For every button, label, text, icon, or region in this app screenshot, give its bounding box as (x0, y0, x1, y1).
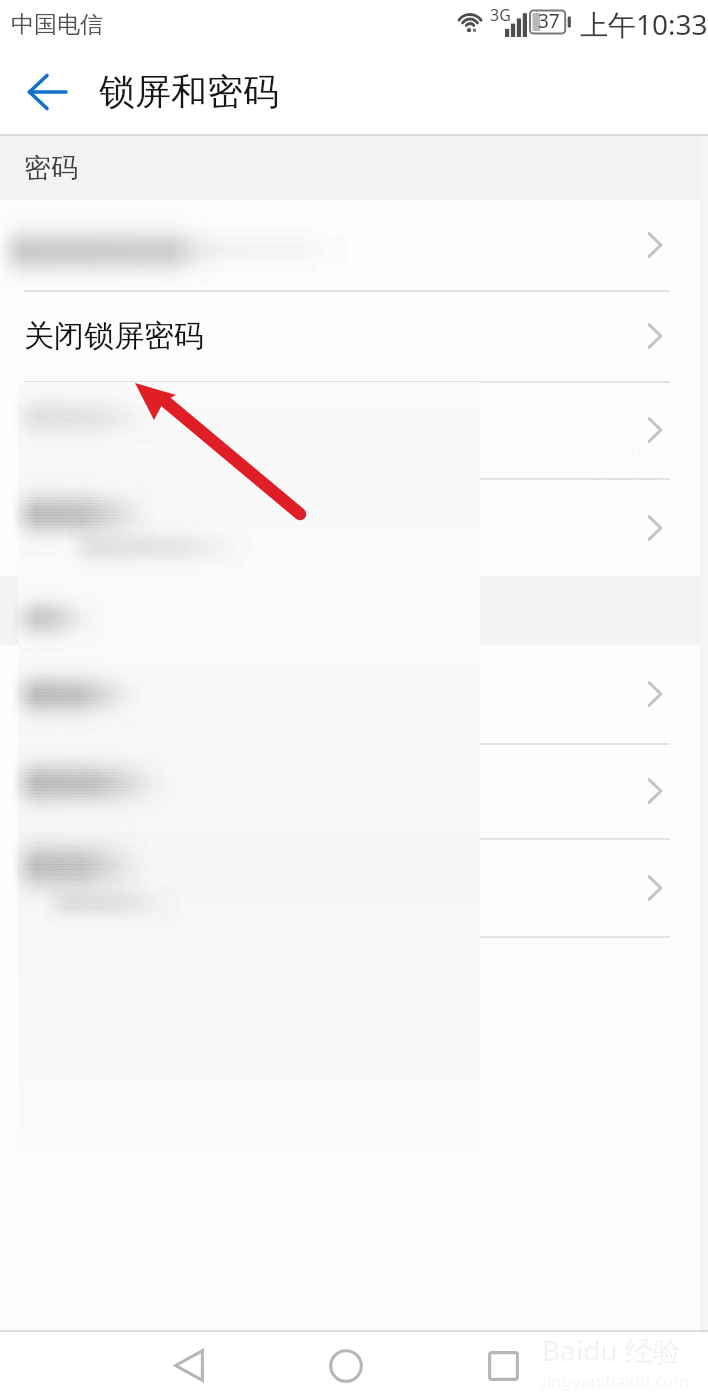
staticText: 中国电信 (11, 10, 103, 39)
button[interactable] (0, 744, 708, 838)
staticText: 密码 (24, 151, 78, 185)
staticText: jingyan.baidu.com (590, 467, 703, 485)
button[interactable] (0, 382, 708, 478)
button[interactable]: Recents (443, 1335, 563, 1396)
button[interactable]: Home (286, 1335, 406, 1396)
staticText: 关闭锁屏密码 (24, 317, 204, 355)
staticText: Baidu 经验 (590, 437, 700, 467)
staticText: 37 (538, 8, 560, 34)
staticText: Baidu 经验 (542, 1331, 681, 1369)
button[interactable] (0, 645, 708, 743)
staticText: 上午10:33 (580, 5, 708, 43)
button[interactable] (0, 479, 708, 576)
staticText: 锁屏和密码 (99, 69, 279, 114)
button[interactable] (0, 200, 708, 290)
button[interactable]: Back (129, 1335, 249, 1396)
button[interactable]: Back (14, 48, 80, 136)
button[interactable]: 关闭锁屏密码 (0, 291, 708, 381)
staticText: 3G (490, 4, 511, 26)
button[interactable] (0, 839, 708, 936)
